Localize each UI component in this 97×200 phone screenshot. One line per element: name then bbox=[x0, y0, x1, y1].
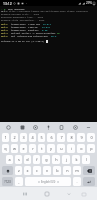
staticText: 4 bbox=[31, 135, 34, 140]
staticText: Building dependency tree... Done bbox=[1, 16, 43, 19]
staticText: d bbox=[26, 157, 29, 162]
staticText: apt python3-pip python3-dev bbox=[11, 35, 51, 38]
staticText: Fetched 41.2 MB in 12s (3.4 MB/s) bbox=[1, 40, 45, 43]
button[interactable]: f bbox=[33, 155, 40, 164]
button[interactable]: 5 bbox=[38, 133, 45, 142]
button[interactable]: Switch keyboard bbox=[80, 190, 88, 198]
staticText: 14.0.6 bbox=[42, 26, 50, 29]
button[interactable]: GIF bbox=[31, 123, 40, 132]
button[interactable]: ?123 bbox=[2, 177, 13, 186]
button[interactable]: 6 bbox=[47, 133, 55, 142]
button[interactable]: g bbox=[42, 155, 50, 164]
staticText: q bbox=[4, 146, 7, 151]
button[interactable]: Google search bbox=[4, 123, 13, 132]
button[interactable]: . bbox=[73, 177, 81, 186]
button[interactable]: r bbox=[29, 144, 36, 153]
button[interactable]: , bbox=[15, 177, 23, 186]
staticText: 22.3 bbox=[51, 35, 57, 38]
staticText: o bbox=[80, 146, 83, 151]
staticText: Get:5 bbox=[1, 35, 11, 38]
button[interactable]: z bbox=[15, 166, 22, 175]
staticText: y bbox=[50, 146, 52, 151]
button[interactable]: c bbox=[33, 166, 41, 175]
staticText: h bbox=[55, 157, 58, 162]
staticText: i bbox=[71, 146, 72, 151]
staticText: m bbox=[75, 168, 79, 173]
button[interactable]: Stickers bbox=[18, 123, 27, 132]
staticText: p bbox=[90, 146, 93, 151]
button[interactable]: 8 bbox=[67, 133, 75, 142]
button[interactable]: Back, hide keyboard bbox=[64, 189, 74, 199]
button[interactable]: p bbox=[87, 144, 95, 153]
button[interactable]: n bbox=[63, 166, 71, 175]
staticText: n bbox=[66, 168, 69, 173]
button[interactable]: l bbox=[82, 155, 90, 164]
button[interactable]: j bbox=[62, 155, 70, 164]
button[interactable]: k bbox=[72, 155, 80, 164]
staticText: ok bbox=[57, 32, 60, 35]
button[interactable]: m bbox=[73, 166, 81, 175]
button[interactable]: i bbox=[67, 144, 75, 153]
button[interactable]: 0 bbox=[87, 133, 95, 142]
button[interactable]: Voice input bbox=[44, 123, 53, 132]
button[interactable]: x bbox=[24, 166, 31, 175]
button[interactable]: d bbox=[24, 155, 31, 164]
button[interactable]: Recent apps bbox=[20, 189, 30, 199]
staticText: 9 bbox=[80, 135, 83, 140]
button[interactable]: 4 bbox=[29, 133, 36, 142]
button[interactable]: v bbox=[43, 166, 51, 175]
button[interactable]: w bbox=[11, 144, 18, 153]
staticText: g bbox=[45, 157, 48, 162]
staticText: 29% bbox=[86, 1, 92, 5]
staticText: . bbox=[76, 179, 78, 184]
staticText: e bbox=[22, 146, 25, 151]
button[interactable]: 2 bbox=[11, 133, 18, 142]
staticText: termux-main binutils bbox=[11, 29, 42, 32]
staticText: r bbox=[32, 146, 34, 151]
staticText: Get:1 bbox=[1, 23, 11, 26]
button[interactable] bbox=[83, 166, 95, 175]
staticText: 13.0.1 bbox=[43, 23, 51, 26]
button[interactable]: e bbox=[20, 144, 27, 153]
button[interactable]: 1 bbox=[2, 133, 9, 142]
button[interactable]: h bbox=[52, 155, 60, 164]
button[interactable]: t bbox=[38, 144, 45, 153]
staticText: pkg upgrade bbox=[8, 7, 25, 10]
button[interactable]: English (US) bbox=[25, 177, 71, 186]
staticText: c bbox=[36, 168, 38, 173]
staticText: b bbox=[56, 168, 59, 173]
staticText: 2 bbox=[13, 135, 16, 140]
button[interactable]: q bbox=[2, 144, 9, 153]
button[interactable]: a bbox=[6, 155, 13, 164]
button[interactable]: 3 bbox=[20, 133, 27, 142]
button[interactable]: u bbox=[57, 144, 65, 153]
button[interactable]: Settings bbox=[71, 123, 80, 132]
staticText: Hit:1 bbox=[1, 10, 9, 13]
button[interactable]: Home bbox=[42, 189, 52, 199]
button[interactable] bbox=[83, 177, 95, 186]
staticText: 1 bbox=[4, 135, 7, 140]
staticText: w bbox=[13, 146, 16, 151]
staticText: Get:2 bbox=[1, 26, 11, 29]
button[interactable]: Clipboard bbox=[57, 123, 66, 132]
staticText: 8 bbox=[70, 135, 73, 140]
button[interactable]: More options bbox=[84, 123, 93, 132]
staticText: a bbox=[8, 157, 11, 162]
button[interactable]: b bbox=[53, 166, 61, 175]
staticText: s bbox=[18, 157, 20, 162]
staticText: x bbox=[26, 168, 29, 173]
staticText: 5 bbox=[40, 135, 43, 140]
button[interactable]: 9 bbox=[77, 133, 85, 142]
staticText: Get:3 bbox=[1, 29, 11, 32]
staticText: termux-main clang arm bbox=[11, 23, 43, 26]
staticText: apt-get install -y build-essential bbox=[11, 32, 57, 35]
staticText: ~ $ bbox=[1, 7, 8, 10]
button[interactable]: o bbox=[77, 144, 85, 153]
button[interactable] bbox=[2, 166, 13, 175]
button[interactable]: y bbox=[47, 144, 55, 153]
button[interactable]: s bbox=[15, 155, 22, 164]
staticText: 13:12 bbox=[3, 1, 12, 6]
staticText: v bbox=[46, 168, 48, 173]
button[interactable]: 7 bbox=[57, 133, 65, 142]
staticText: 7 bbox=[60, 135, 63, 140]
